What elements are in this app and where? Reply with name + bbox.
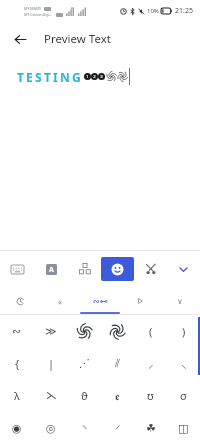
staticText: Preview Text	[44, 31, 111, 47]
staticText: ꬲ	[115, 388, 120, 403]
staticText: ☘	[146, 422, 156, 435]
button[interactable]: Collapse	[167, 251, 200, 287]
button[interactable]: Glyph 22	[68, 379, 101, 412]
button[interactable]: Glyph 00	[0, 315, 34, 347]
button[interactable]: Glyph 25	[167, 379, 200, 412]
staticText: G	[72, 69, 81, 85]
button[interactable]: Glyph 11	[34, 347, 68, 379]
button[interactable]: Font style	[34, 251, 68, 287]
staticText: MY MAXIS	[24, 6, 42, 11]
staticText: ⋋	[46, 389, 57, 402]
staticText: ⸜	[181, 356, 187, 371]
button[interactable]: Stickers	[68, 251, 101, 287]
staticText: ∨	[177, 297, 183, 306]
staticText: ʊ	[147, 388, 154, 403]
button[interactable]: Glyph 21	[34, 379, 68, 412]
button[interactable]: More	[160, 287, 200, 315]
staticText: ⸍	[115, 421, 121, 436]
button[interactable]: Keyboard	[0, 251, 34, 287]
button[interactable]: Glyph 15	[167, 347, 200, 379]
staticText: ϑ	[81, 388, 88, 403]
button[interactable]: Glyph 05	[167, 315, 200, 347]
staticText: ◎	[46, 422, 56, 435]
staticText: MY CelcomDigi...	[24, 12, 53, 17]
button[interactable]: Back	[6, 25, 34, 53]
button[interactable]: Glyph 30	[0, 412, 34, 445]
button[interactable]: Glyph 14	[134, 347, 167, 379]
staticText: T	[44, 69, 51, 85]
staticText: S	[35, 69, 42, 85]
staticText: ∾⊷	[93, 297, 108, 306]
button[interactable]: Glyph 13	[101, 347, 134, 379]
staticText: ∾	[12, 325, 22, 338]
staticText: ◫	[178, 422, 189, 435]
staticText: 1	[86, 74, 89, 80]
staticText: ⋰	[79, 357, 90, 370]
button[interactable]: Symbols	[80, 287, 120, 315]
staticText: λ	[14, 388, 20, 403]
button[interactable]: Emoji	[101, 257, 134, 281]
staticText: 10%	[147, 7, 159, 15]
staticText: )	[182, 324, 186, 339]
button[interactable]: Glyph 10	[0, 347, 34, 379]
staticText: ◉	[12, 422, 22, 435]
staticText: 3	[100, 74, 103, 80]
staticText: |	[48, 356, 55, 371]
button[interactable]: Effects	[134, 251, 167, 287]
staticText: 21:25	[175, 6, 193, 16]
button[interactable]: Glyph 32	[68, 412, 101, 445]
button[interactable]: Glyph 03	[101, 315, 134, 347]
button[interactable]: Glyph 20	[0, 379, 34, 412]
button[interactable]: Previous	[40, 287, 80, 315]
staticText: (	[149, 324, 153, 339]
staticText: «	[58, 296, 63, 307]
button[interactable]: Glyph 31	[34, 412, 68, 445]
staticText: ⸌	[82, 421, 88, 436]
staticText: T	[17, 69, 24, 85]
button[interactable]: Glyph 04	[134, 315, 167, 347]
staticText: ⸝	[148, 356, 154, 371]
staticText: {	[15, 356, 20, 371]
staticText: ≫	[45, 325, 57, 338]
staticText: E	[26, 69, 33, 85]
button[interactable]: Glyph 23	[101, 379, 134, 412]
button[interactable]: Recent	[0, 287, 40, 315]
button[interactable]: Glyph 34	[134, 412, 167, 445]
button[interactable]: Glyph 02	[68, 315, 101, 347]
button[interactable]: Glyph 33	[101, 412, 134, 445]
button[interactable]: Glyph 35	[167, 412, 200, 445]
staticText: 2	[93, 74, 96, 80]
staticText: I	[53, 69, 58, 85]
staticText: σ	[180, 388, 187, 403]
staticText: A	[49, 265, 54, 275]
button[interactable]: Next	[120, 287, 160, 315]
button[interactable]: Glyph 24	[134, 379, 167, 412]
staticText: N	[60, 69, 70, 85]
button[interactable]: Glyph 01	[34, 315, 68, 347]
staticText: ⫽	[115, 358, 120, 369]
button[interactable]: Glyph 12	[68, 347, 101, 379]
